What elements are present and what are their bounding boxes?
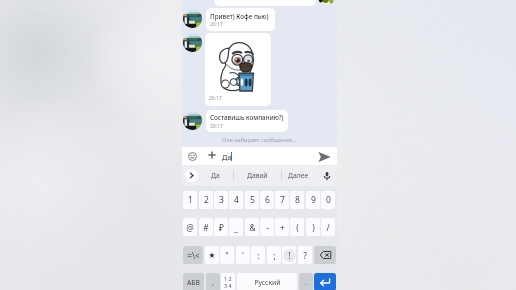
staticText: 7 <box>280 194 285 206</box>
staticText: ₽ <box>219 222 224 233</box>
button[interactable]: ; <box>267 246 281 264</box>
staticText: - <box>266 222 269 233</box>
button[interactable]: ₽ <box>214 218 228 236</box>
button[interactable]: ! <box>282 246 296 264</box>
staticText: " <box>225 250 229 261</box>
button[interactable]: ' <box>236 246 250 264</box>
button[interactable]: 3 <box>214 191 228 209</box>
button[interactable]: 6 <box>260 191 274 209</box>
staticText: @ <box>186 222 194 233</box>
button[interactable]: Backspace <box>314 246 336 264</box>
button[interactable]: Составишь компанию?) <box>206 110 288 132</box>
staticText: 3 4 <box>224 282 232 289</box>
button[interactable]: # <box>199 218 213 236</box>
button[interactable]: Да <box>211 165 220 186</box>
button[interactable]: ★ <box>205 246 219 264</box>
button[interactable]: 5 <box>245 191 259 209</box>
button[interactable]: : <box>251 246 265 264</box>
button[interactable]: / <box>321 218 335 236</box>
staticText: # <box>203 222 209 233</box>
button[interactable]: =\< <box>183 246 203 264</box>
staticText: 9 <box>311 194 316 206</box>
staticText: АБВ <box>187 278 200 287</box>
button[interactable]: 0 <box>321 191 335 209</box>
staticText: Русский <box>254 278 281 287</box>
staticText: ; <box>273 250 276 261</box>
staticText: 4 <box>234 194 239 206</box>
button[interactable]: 1 <box>183 191 197 209</box>
staticText: + <box>280 222 285 233</box>
button[interactable]: Send <box>316 148 333 165</box>
button[interactable]: Voice input <box>320 169 334 183</box>
staticText: 0 <box>326 194 331 206</box>
button[interactable]: ( <box>290 218 304 236</box>
staticText: 6 <box>265 194 270 206</box>
button[interactable]: Русский <box>237 273 297 290</box>
button[interactable]: + <box>275 218 289 236</box>
staticText: ' <box>242 250 244 261</box>
staticText: 5 <box>250 194 255 206</box>
button[interactable]: Привет) Кофе пью) <box>206 8 275 31</box>
button[interactable]: 20:17 <box>205 33 271 106</box>
staticText: Составишь компанию?) <box>210 113 284 122</box>
staticText: . <box>305 278 307 287</box>
staticText: =\< <box>187 250 200 261</box>
staticText: : <box>257 250 260 261</box>
button[interactable]: - <box>260 218 274 236</box>
button[interactable]: ? <box>298 246 312 264</box>
button[interactable]: Attach <box>206 149 218 161</box>
button[interactable]: Далее <box>288 165 309 186</box>
staticText: Далее <box>288 171 309 180</box>
button[interactable]: Enter <box>314 273 336 290</box>
button[interactable]: 2 <box>199 191 213 209</box>
staticText: 2 <box>204 194 209 206</box>
button[interactable]: More suggestions <box>185 169 198 182</box>
button[interactable]: @ <box>183 218 197 236</box>
button[interactable]: Profile photo <box>183 9 202 28</box>
button[interactable]: & <box>245 218 259 236</box>
button[interactable]: 7 <box>275 191 289 209</box>
staticText: 8 <box>295 194 300 206</box>
button[interactable]: _ <box>229 218 243 236</box>
button[interactable]: " <box>220 246 234 264</box>
button[interactable]: Давай <box>247 165 268 186</box>
staticText: Да <box>211 171 220 180</box>
staticText: 20:17 <box>210 123 223 130</box>
button[interactable]: Profile photo <box>183 111 202 130</box>
button[interactable]: АБВ <box>183 273 204 290</box>
staticText: Оля набирает сообщение... <box>222 136 297 144</box>
button[interactable]: Profile photo <box>183 33 202 52</box>
staticText: 20:17 <box>210 21 223 28</box>
button[interactable]: 9 <box>306 191 320 209</box>
button[interactable]: 4 <box>229 191 243 209</box>
button[interactable]: . <box>299 273 313 290</box>
staticText: ( <box>296 222 299 233</box>
staticText: ? <box>303 250 307 261</box>
staticText: _ <box>234 222 238 233</box>
button[interactable]: 8 <box>290 191 304 209</box>
staticText: 20:17 <box>209 95 222 102</box>
staticText: ! <box>288 250 291 261</box>
staticText: , <box>212 278 214 287</box>
staticText: & <box>249 222 256 233</box>
button[interactable]: ) <box>306 218 320 236</box>
staticText: ) <box>312 222 315 233</box>
button[interactable]: Numbers <box>221 273 235 290</box>
staticText: / <box>326 222 330 233</box>
staticText: 3 <box>219 194 224 206</box>
staticText: Да <box>222 152 232 162</box>
staticText: 1 <box>188 194 193 206</box>
staticText: ★ <box>208 250 216 260</box>
staticText: Привет) Кофе пью) <box>210 12 269 21</box>
button[interactable]: , <box>206 273 220 290</box>
button[interactable]: Emoji <box>185 149 199 163</box>
staticText: 1 2 <box>224 275 232 282</box>
staticText: Давай <box>247 171 268 180</box>
